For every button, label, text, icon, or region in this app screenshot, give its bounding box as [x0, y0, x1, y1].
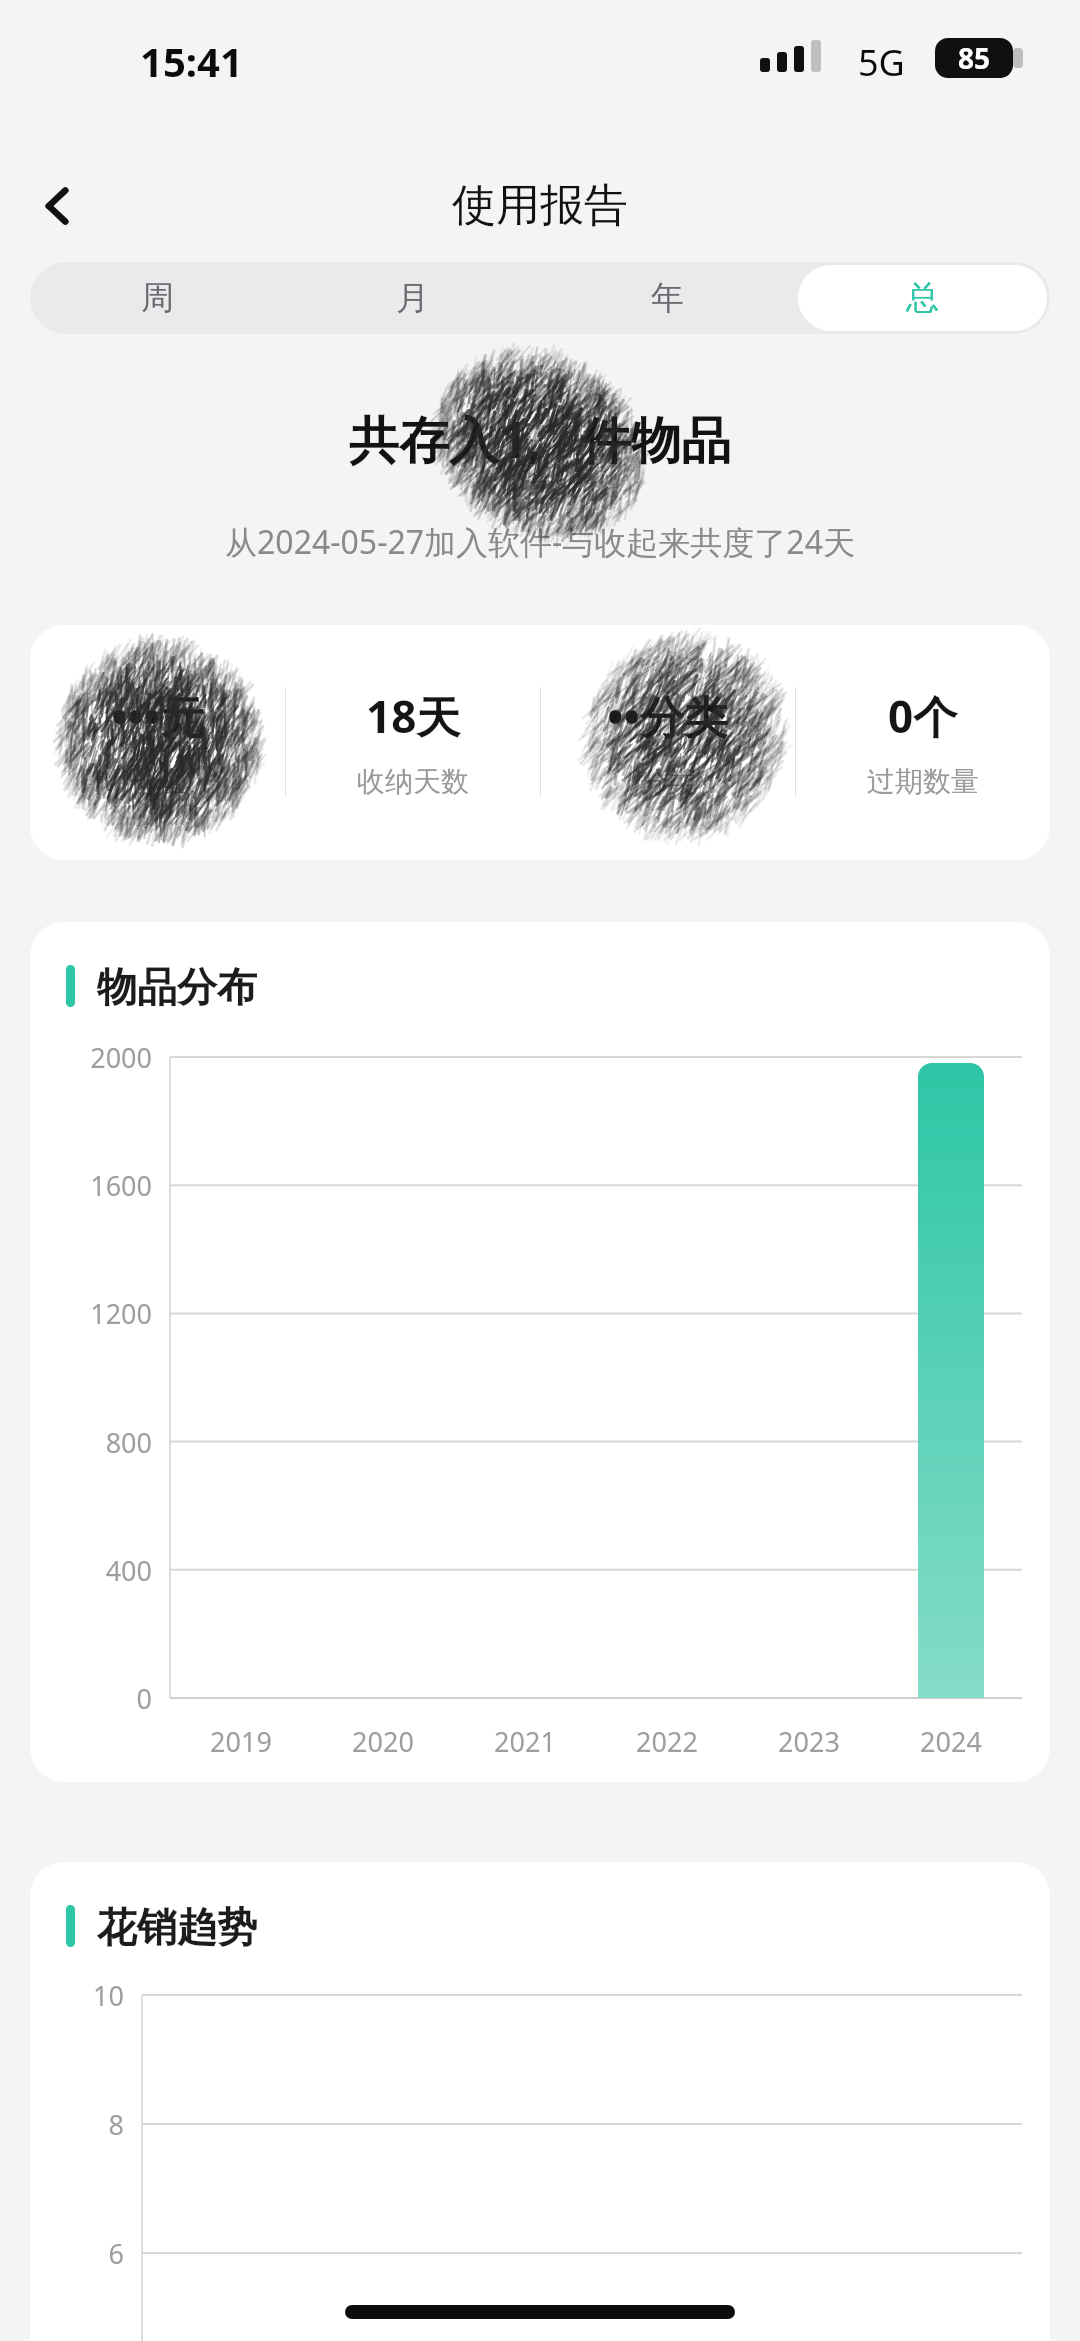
staticText: 花销趋势	[97, 1902, 257, 1950]
staticText: 使用报告	[0, 178, 1080, 233]
staticText: 2022	[596, 1723, 738, 1760]
staticText: 1200	[30, 1295, 152, 1332]
staticText: 0	[30, 1680, 152, 1717]
button[interactable]: 返回	[12, 160, 104, 252]
staticText: 分类	[640, 764, 696, 799]
staticText: 800	[30, 1424, 152, 1461]
staticText: 总	[906, 277, 939, 319]
staticText: 收纳天数	[357, 764, 469, 799]
staticText: 400	[30, 1552, 152, 1589]
staticText: 0个	[888, 686, 958, 746]
button[interactable]: 0个	[796, 625, 1050, 860]
staticText: •••元	[111, 686, 205, 746]
staticText: 2021	[454, 1723, 596, 1760]
staticText: 月	[396, 277, 429, 319]
staticText: 85	[958, 39, 991, 77]
button[interactable]: 18天	[286, 625, 540, 860]
staticText: 10	[30, 1977, 124, 2014]
button[interactable]: ••分类	[541, 625, 795, 860]
staticText: 6	[30, 2235, 124, 2272]
staticText: 5G	[858, 38, 905, 87]
staticText: 物品分布	[97, 962, 257, 1010]
staticText: 2023	[738, 1723, 880, 1760]
staticText: 过期数量	[867, 764, 979, 799]
staticText: 2024	[880, 1723, 1022, 1760]
button[interactable]: •••元	[30, 625, 285, 860]
staticText: 价值	[130, 764, 186, 799]
button[interactable]: 月	[288, 265, 537, 331]
button[interactable]: 周	[33, 265, 282, 331]
staticText: 2019	[170, 1723, 312, 1760]
staticText: 2020	[312, 1723, 454, 1760]
staticText: 8	[30, 2106, 124, 2143]
staticText: 年	[651, 277, 684, 319]
staticText: 1600	[30, 1167, 152, 1204]
staticText: 18天	[366, 686, 461, 746]
button[interactable]: 总	[798, 265, 1047, 331]
staticText: 从2024-05-27加入软件-与收起来共度了24天	[0, 520, 1080, 564]
staticText: 15:41	[140, 34, 243, 88]
staticText: 共存入1, 件物品	[0, 405, 1080, 473]
button[interactable]: 年	[543, 265, 792, 331]
staticText: 周	[141, 277, 174, 319]
staticText: ••分类	[607, 686, 729, 746]
staticText: 2000	[30, 1039, 152, 1076]
